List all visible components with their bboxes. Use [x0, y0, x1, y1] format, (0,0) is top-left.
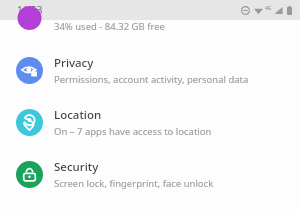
button[interactable]: Privacy	[0, 44, 300, 96]
staticText: On – 7 apps have access to location	[54, 125, 212, 138]
staticText: 4G	[265, 5, 272, 12]
button[interactable]: Location	[0, 96, 300, 148]
staticText: Permissions, account activity, personal …	[54, 73, 249, 86]
staticText: 34% used - 84.32 GB free	[54, 20, 165, 33]
button[interactable]: 34% used - 84.32 GB free	[0, 20, 300, 44]
staticText: Privacy	[54, 55, 94, 71]
staticText: Screen lock, fingerprint, face unlock	[54, 177, 214, 190]
staticText: 11:53	[17, 3, 43, 17]
staticText: Location	[54, 107, 102, 123]
staticText: Security	[54, 159, 99, 175]
button[interactable]: Security	[0, 148, 300, 200]
